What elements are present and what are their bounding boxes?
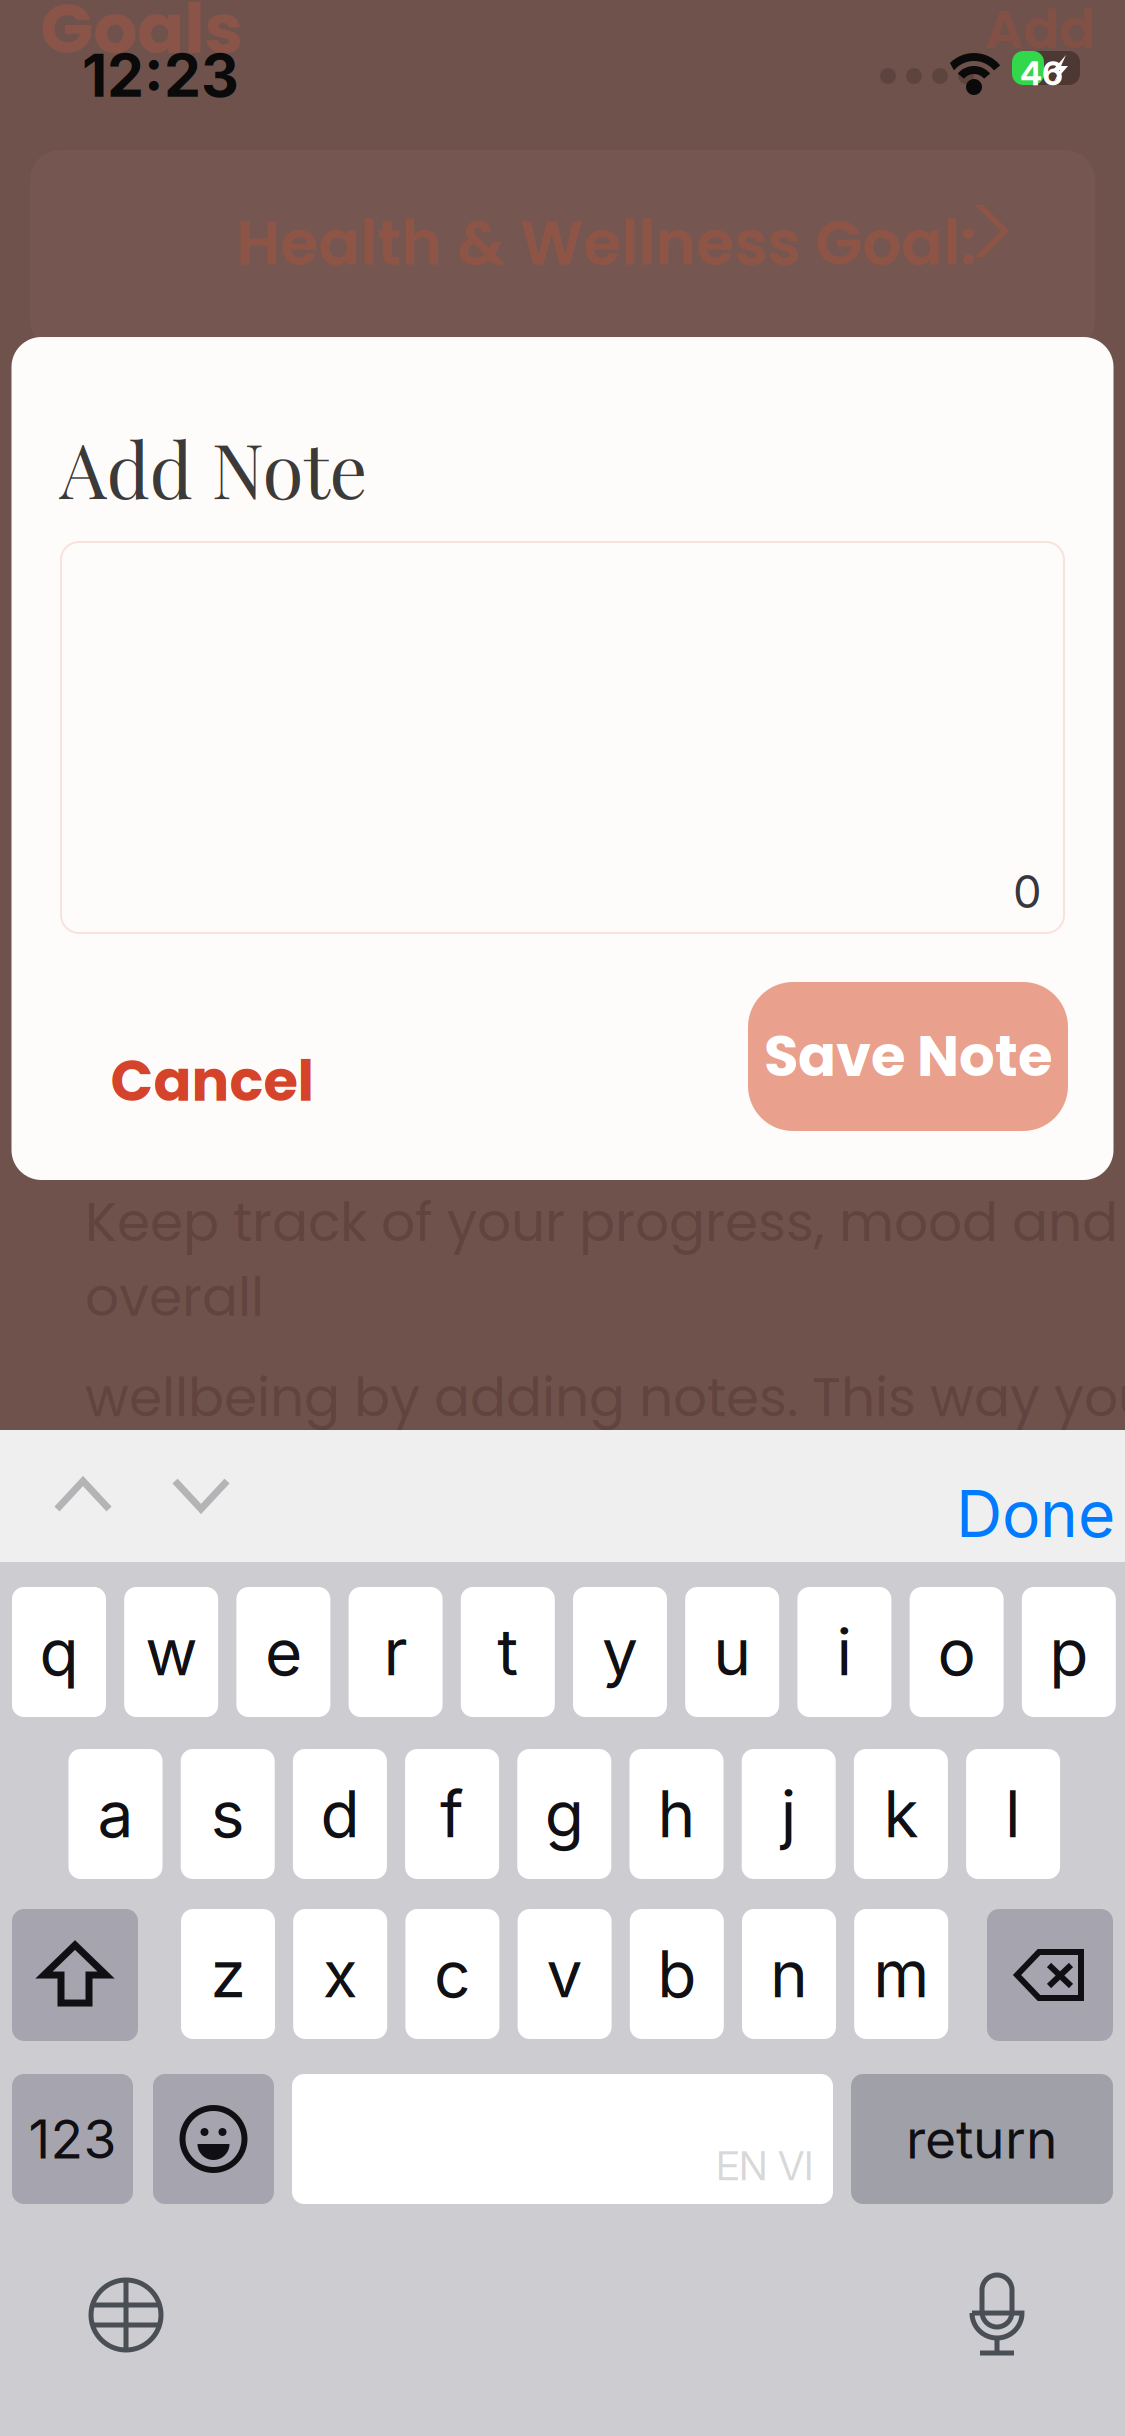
staticText: n [770, 1935, 808, 2013]
staticText: z [210, 1935, 245, 2013]
staticText: m [873, 1935, 929, 2013]
staticText: return [906, 2107, 1058, 2171]
staticText: 0 [1013, 864, 1042, 919]
staticText: k [883, 1775, 918, 1853]
staticText: e [265, 1613, 302, 1691]
staticText: Goals [40, 0, 243, 77]
button[interactable]: Done [956, 1475, 1115, 1552]
button[interactable]: Save Note [748, 982, 1068, 1131]
staticText: v [547, 1935, 583, 2013]
staticText: r [384, 1613, 408, 1691]
staticText: a [97, 1775, 133, 1853]
staticText: Add Note [59, 418, 367, 517]
staticText: l [1005, 1775, 1021, 1853]
staticText: c [434, 1935, 471, 2013]
staticText: d [320, 1775, 359, 1853]
staticText: Keep track of your progress, mood and ov… [85, 1185, 1118, 1334]
staticText: q [39, 1613, 78, 1691]
staticText: x [323, 1935, 358, 2013]
staticText: w [145, 1613, 197, 1691]
staticText: o [938, 1613, 976, 1691]
staticText: 123 [28, 2107, 116, 2171]
staticText: h [657, 1775, 695, 1853]
staticText: EN VI [716, 2142, 813, 2190]
staticText: t [497, 1613, 518, 1691]
staticText: 46 [1020, 53, 1063, 93]
staticText: Save Note [764, 1017, 1052, 1096]
staticText: y [602, 1613, 638, 1691]
staticText: p [1049, 1613, 1088, 1691]
staticText: i [836, 1613, 852, 1691]
staticText: g [545, 1775, 584, 1853]
staticText: 12:23 [82, 40, 239, 111]
staticText: Cancel [110, 1042, 314, 1120]
staticText: b [657, 1935, 696, 2013]
staticText: look back and reflect on your journey so… [85, 1536, 1125, 1685]
button[interactable]: Cancel [90, 1022, 334, 1140]
staticText: f [440, 1775, 464, 1853]
staticText: s [211, 1775, 245, 1853]
staticText: j [781, 1775, 797, 1853]
staticText: Done [956, 1475, 1115, 1552]
staticText: Health & Wellness Goal: [236, 200, 976, 286]
staticText: Add [985, 0, 1095, 67]
staticText: u [713, 1613, 751, 1691]
staticText: wellbeing by adding notes. This way you … [85, 1360, 1125, 1510]
